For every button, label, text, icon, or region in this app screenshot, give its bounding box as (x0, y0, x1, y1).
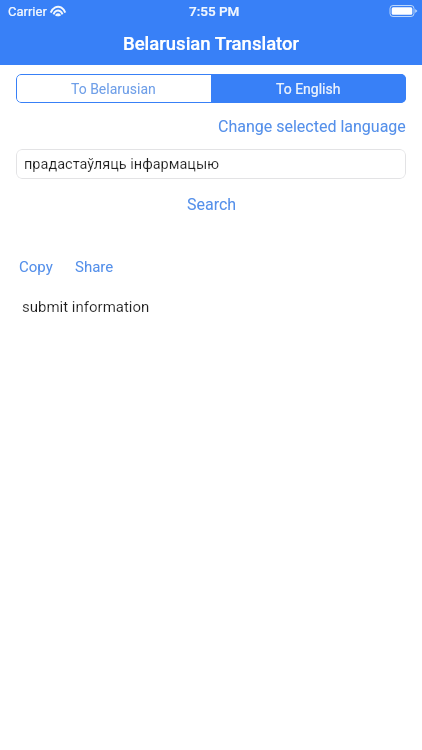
button[interactable]: Copy (19, 258, 53, 276)
button[interactable]: Share (75, 258, 114, 276)
staticText: Carrier (8, 4, 47, 19)
staticText: Share (75, 258, 114, 276)
other: Wi-Fi signal (50, 6, 66, 17)
staticText: 7:55 PM (189, 3, 240, 19)
button[interactable]: Change selected language (218, 117, 422, 136)
staticText: To Belarusian (71, 81, 156, 97)
staticText: Copy (19, 258, 53, 276)
button[interactable]: To Belarusian (16, 74, 211, 103)
staticText: submit information (22, 298, 150, 316)
staticText: To English (276, 81, 341, 97)
button[interactable]: To English (211, 74, 406, 103)
button[interactable]: прадастаўляць інфармацыю (16, 149, 406, 179)
staticText: Belarusian Translator (123, 33, 300, 55)
other: Battery full (390, 5, 420, 17)
staticText: прадастаўляць інфармацыю (24, 156, 220, 173)
button[interactable]: Search (177, 192, 247, 217)
